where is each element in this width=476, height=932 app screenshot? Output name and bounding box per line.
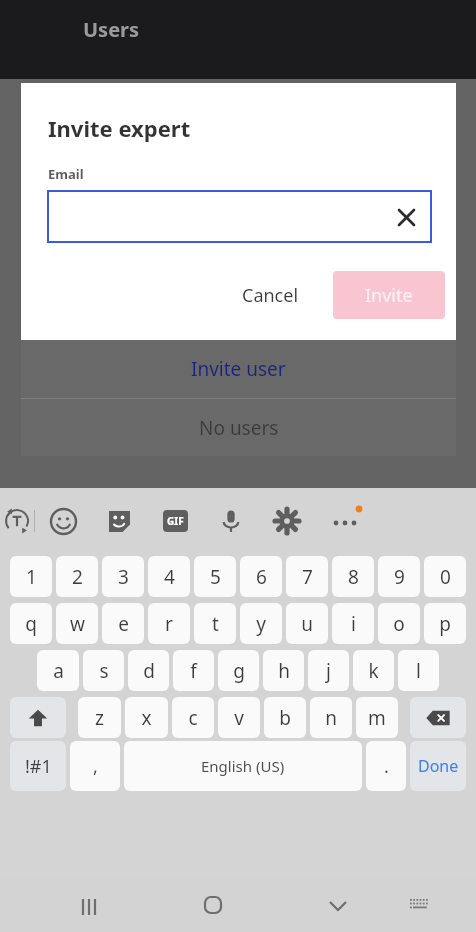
- staticText: Users: [83, 16, 140, 43]
- staticText: o: [393, 611, 405, 637]
- staticText: u: [301, 611, 313, 637]
- button[interactable]: e: [102, 603, 144, 644]
- staticText: j: [326, 658, 331, 684]
- button[interactable]: j: [308, 650, 349, 691]
- staticText: m: [368, 705, 386, 731]
- button[interactable]: g: [218, 650, 259, 691]
- button[interactable]: d: [128, 650, 169, 691]
- button[interactable]: Clear: [391, 202, 421, 232]
- staticText: 3: [118, 564, 129, 590]
- staticText: Invite: [365, 283, 413, 308]
- button[interactable]: 0: [424, 556, 466, 597]
- button[interactable]: 3: [102, 556, 144, 597]
- button[interactable]: v: [218, 697, 260, 738]
- staticText: k: [368, 658, 379, 684]
- staticText: f: [190, 658, 197, 684]
- button[interactable]: Voice input: [203, 497, 259, 545]
- staticText: 5: [210, 564, 221, 590]
- button[interactable]: Hide keyboard: [314, 881, 362, 929]
- staticText: 8: [348, 564, 359, 590]
- staticText: 0: [440, 564, 451, 590]
- button[interactable]: More options: [315, 497, 375, 545]
- button[interactable]: Home: [189, 881, 237, 929]
- button[interactable]: Cancel: [226, 273, 315, 318]
- button[interactable]: Invite: [333, 271, 445, 319]
- button[interactable]: Clear: [48, 191, 431, 242]
- staticText: 2: [72, 564, 83, 590]
- staticText: English (US): [201, 756, 285, 776]
- button[interactable]: p: [424, 603, 466, 644]
- button[interactable]: Invite user: [21, 340, 456, 398]
- button[interactable]: !#1: [10, 741, 66, 791]
- button[interactable]: k: [353, 650, 394, 691]
- staticText: d: [143, 658, 155, 684]
- button[interactable]: n: [310, 697, 352, 738]
- staticText: z: [95, 705, 104, 731]
- button[interactable]: z: [78, 697, 121, 738]
- staticText: q: [25, 611, 37, 637]
- staticText: Invite expert: [48, 113, 191, 143]
- button[interactable]: Recents: [64, 881, 112, 929]
- staticText: r: [165, 611, 173, 637]
- button[interactable]: .: [366, 741, 406, 791]
- button[interactable]: a: [37, 650, 79, 691]
- staticText: l: [416, 658, 421, 684]
- button[interactable]: 2: [56, 556, 98, 597]
- staticText: .: [384, 754, 389, 779]
- button[interactable]: o: [378, 603, 420, 644]
- staticText: i: [351, 611, 356, 637]
- button[interactable]: 7: [286, 556, 328, 597]
- staticText: x: [141, 705, 152, 731]
- button[interactable]: ,: [70, 741, 120, 791]
- button[interactable]: Stickers: [91, 497, 147, 545]
- staticText: t: [212, 611, 219, 637]
- staticText: w: [70, 611, 85, 637]
- staticText: p: [439, 611, 451, 637]
- button[interactable]: 8: [332, 556, 374, 597]
- button[interactable]: b: [264, 697, 306, 738]
- staticText: n: [325, 705, 337, 731]
- button[interactable]: 9: [378, 556, 420, 597]
- staticText: Cancel: [242, 283, 299, 308]
- staticText: Invite user: [191, 356, 286, 382]
- staticText: s: [99, 658, 109, 684]
- staticText: 4: [164, 564, 175, 590]
- button[interactable]: y: [240, 603, 282, 644]
- button[interactable]: u: [286, 603, 328, 644]
- button[interactable]: Settings: [259, 497, 315, 545]
- button[interactable]: x: [125, 697, 168, 738]
- button[interactable]: English (US): [124, 741, 362, 791]
- staticText: e: [118, 611, 129, 637]
- button[interactable]: 6: [240, 556, 282, 597]
- button[interactable]: Done: [410, 741, 466, 791]
- staticText: c: [188, 705, 198, 731]
- button[interactable]: Emoji: [35, 497, 91, 545]
- button[interactable]: 1: [10, 556, 52, 597]
- staticText: h: [278, 658, 290, 684]
- button[interactable]: c: [172, 697, 214, 738]
- staticText: !#1: [25, 754, 52, 779]
- staticText: y: [256, 611, 266, 637]
- button[interactable]: r: [148, 603, 190, 644]
- button[interactable]: w: [56, 603, 98, 644]
- button[interactable]: Backspace: [410, 697, 466, 738]
- staticText: 9: [394, 564, 405, 590]
- button[interactable]: s: [83, 650, 124, 691]
- button[interactable]: h: [263, 650, 304, 691]
- button[interactable]: 5: [194, 556, 236, 597]
- button[interactable]: Shift: [10, 697, 66, 738]
- button[interactable]: Switch keyboard: [395, 881, 443, 929]
- button[interactable]: Translate: [0, 497, 34, 545]
- button[interactable]: f: [173, 650, 214, 691]
- button[interactable]: 4: [148, 556, 190, 597]
- button[interactable]: l: [398, 650, 439, 691]
- staticText: 1: [26, 564, 37, 590]
- button[interactable]: m: [356, 697, 398, 738]
- button[interactable]: GIF: [147, 497, 203, 545]
- button[interactable]: i: [332, 603, 374, 644]
- staticText: 6: [256, 564, 267, 590]
- staticText: v: [234, 705, 244, 731]
- button[interactable]: q: [10, 603, 52, 644]
- staticText: g: [233, 658, 245, 684]
- button[interactable]: t: [194, 603, 236, 644]
